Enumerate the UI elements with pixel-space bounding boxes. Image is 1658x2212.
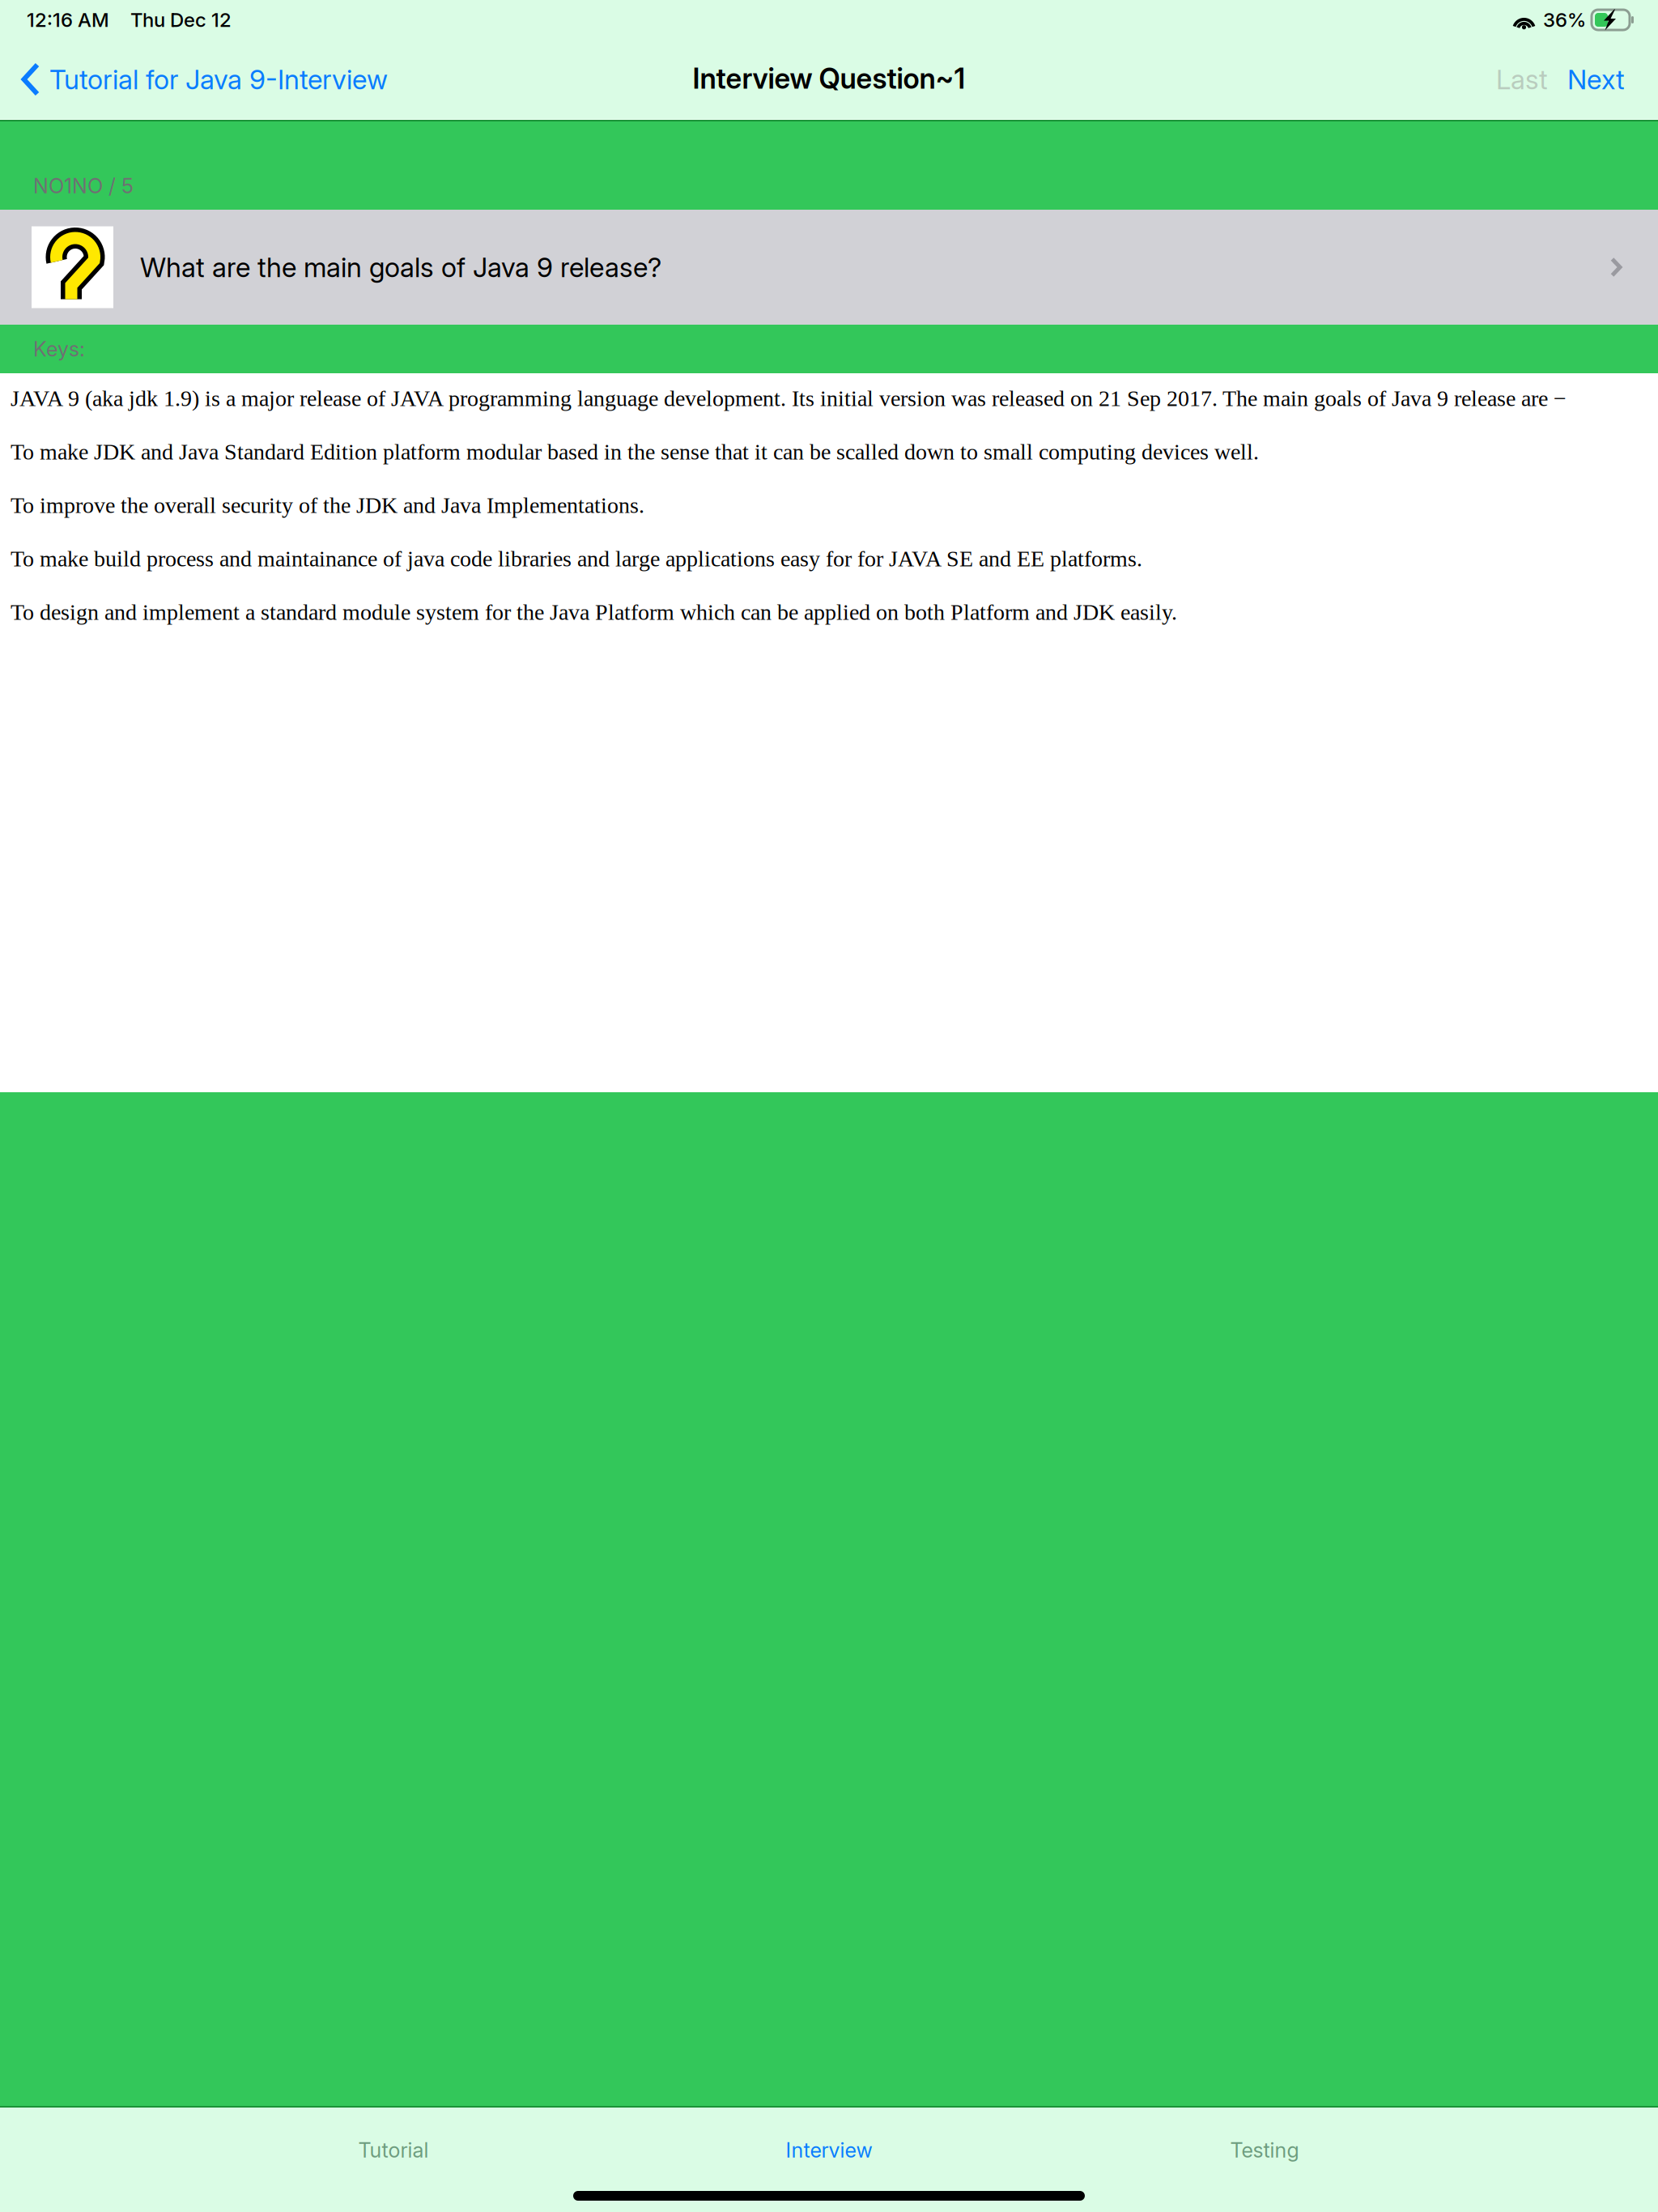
button[interactable]: Next: [1558, 39, 1634, 118]
button[interactable]: Tutorial for Java 9-Interview: [0, 39, 399, 118]
staticText: Testing: [1230, 2138, 1299, 2163]
staticText: JAVA 9 (aka jdk 1.9) is a major release …: [11, 386, 1567, 411]
staticText: Tutorial: [358, 2138, 429, 2163]
staticText: Keys:: [33, 337, 85, 361]
staticText: 36%: [1543, 8, 1586, 32]
button[interactable]: What are the main goals of Java 9 releas…: [0, 210, 1658, 325]
button[interactable]: Testing: [1047, 2123, 1482, 2177]
staticText: Interview Question~1: [693, 62, 965, 95]
staticText: Interview: [786, 2138, 872, 2163]
staticText: 12:16 AM: [27, 8, 109, 32]
staticText: To design and implement a standard modul…: [11, 600, 1177, 625]
button[interactable]: Tutorial: [176, 2123, 611, 2177]
staticText: NO1NO / 5: [33, 173, 134, 198]
staticText: What are the main goals of Java 9 releas…: [140, 251, 661, 283]
staticText: To make build process and maintainance o…: [11, 546, 1142, 571]
staticText: Last: [1496, 63, 1548, 96]
staticText: Tutorial for Java 9-Interview: [49, 63, 388, 96]
button[interactable]: Interview: [611, 2123, 1047, 2177]
staticText: To improve the overall security of the J…: [11, 493, 644, 518]
staticText: To make JDK and Java Standard Edition pl…: [11, 439, 1259, 464]
button[interactable]: Last: [1486, 39, 1558, 118]
staticText: Next: [1567, 63, 1625, 96]
staticText: Thu Dec 12: [130, 8, 232, 32]
